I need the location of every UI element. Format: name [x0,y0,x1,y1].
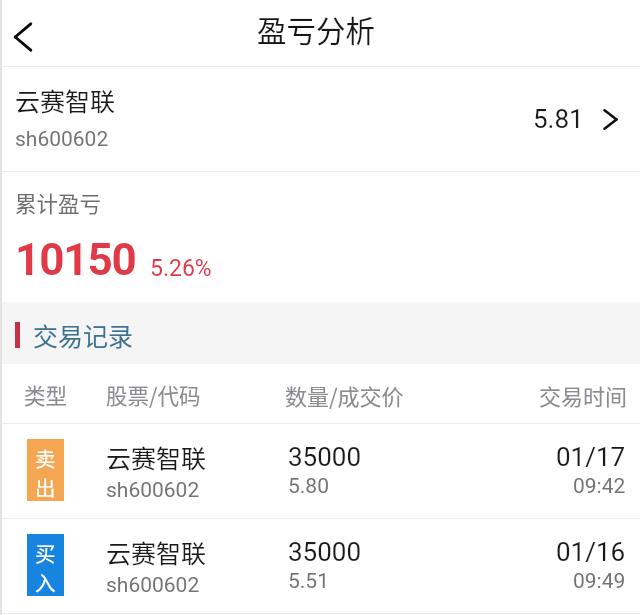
button[interactable]: 卖 [0,424,640,519]
staticText: 5.26% [150,255,212,282]
staticText: 云赛智联 [106,439,207,475]
staticText: 35000 [288,537,362,567]
staticText: 09:42 [573,474,626,499]
staticText: 5.81 [533,104,584,134]
staticText: 数量/成交价 [285,379,404,411]
staticText: sh600602 [106,573,200,598]
staticText: 卖 [35,443,56,473]
staticText: 入 [35,567,56,597]
staticText: 10150 [15,234,136,286]
staticText: 出 [35,472,56,502]
staticText: 股票/代码 [106,379,201,410]
staticText: sh600602 [106,478,200,503]
staticText: sh600602 [15,127,109,152]
staticText: 盈亏分析 [257,8,376,51]
staticText: 累计盈亏 [15,187,102,218]
staticText: 类型 [24,379,68,410]
staticText: 01/17 [556,442,626,472]
staticText: 云赛智联 [15,82,116,118]
button[interactable]: 买 [0,519,640,614]
staticText: 买 [35,538,56,568]
staticText: 5.80 [288,474,329,499]
button[interactable]: 云赛智联 [0,67,640,171]
staticText: 云赛智联 [106,534,207,570]
staticText: 5.51 [288,569,329,594]
button[interactable]: Back [0,5,56,61]
staticText: 交易记录 [33,317,134,353]
staticText: 交易时间 [539,379,628,411]
staticText: 35000 [288,442,362,472]
staticText: 09:49 [573,569,626,594]
staticText: 01/16 [556,537,626,567]
